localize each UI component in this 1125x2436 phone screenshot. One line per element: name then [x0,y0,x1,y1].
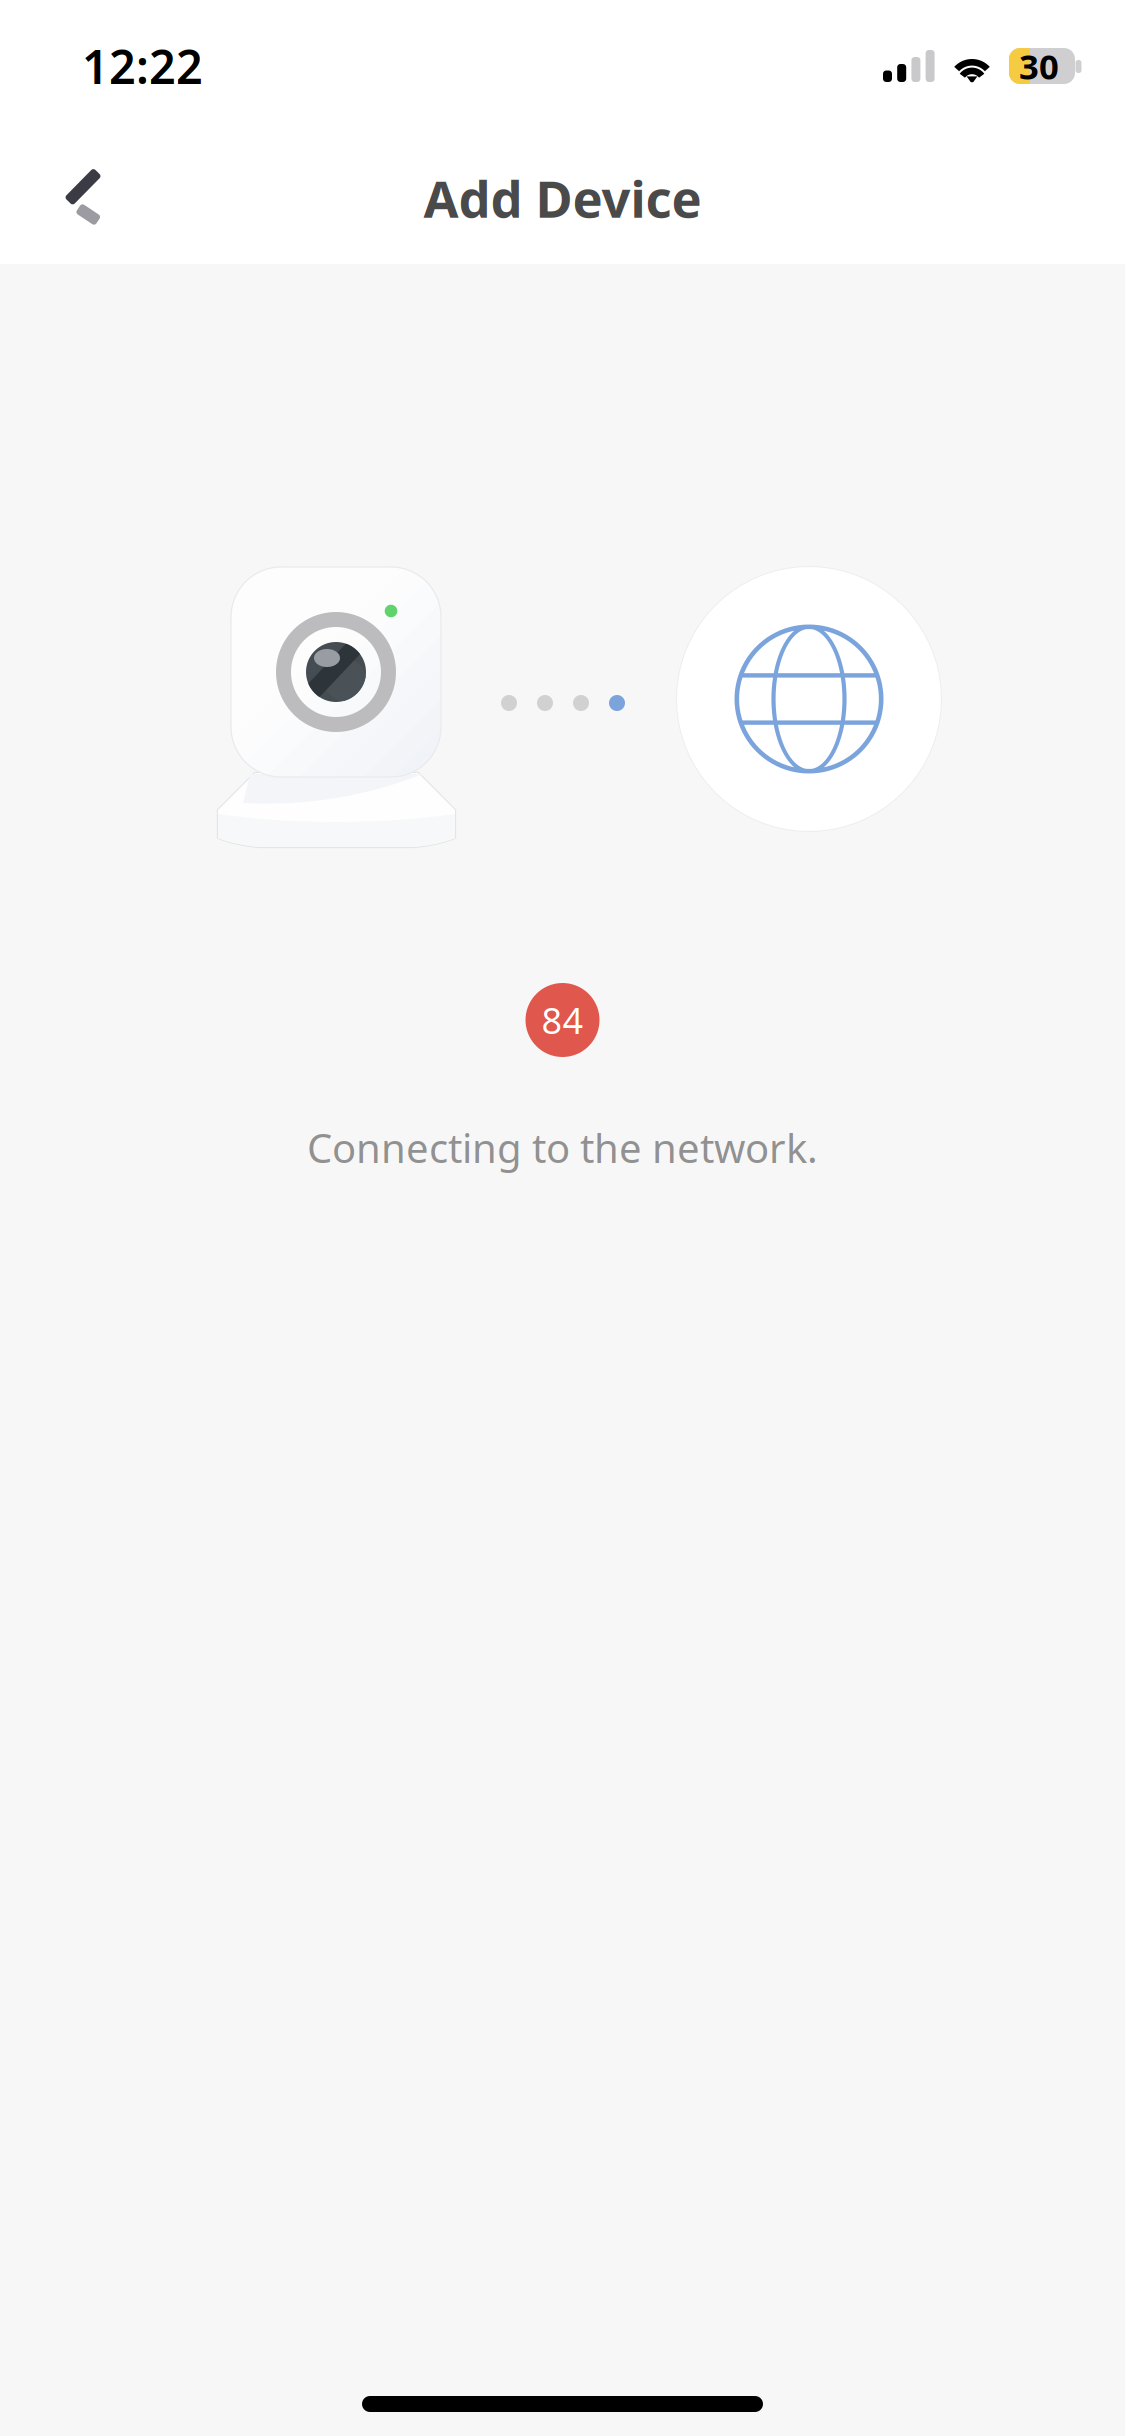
button[interactable]: Back [0,132,175,264]
staticText: 12:22 [82,35,203,97]
staticText: Connecting to the network. [307,1121,818,1174]
staticText: Add Device [423,164,701,232]
staticText: 84 [541,996,583,1044]
staticText: 30 [1019,43,1059,89]
